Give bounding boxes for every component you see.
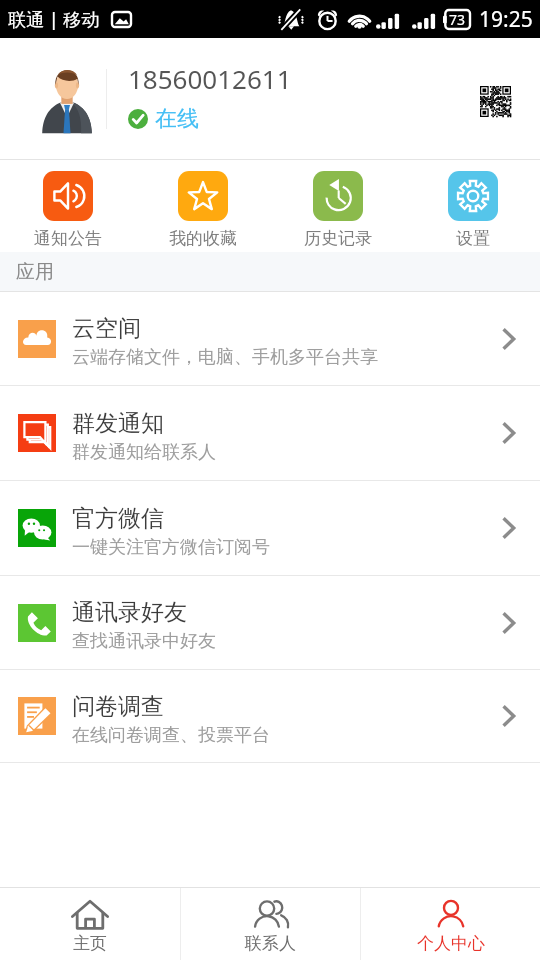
staticText: 在线问卷调查、投票平台 [72,724,270,747]
button[interactable]: 官方微信 [0,481,540,575]
staticText: 设置 [456,228,490,249]
staticText: 查找通讯录中好友 [72,630,216,653]
button[interactable]: 个人中心 [361,888,540,954]
staticText: 群发通知给联系人 [72,441,216,464]
button[interactable]: QR code [480,86,511,117]
staticText: 73 [449,10,466,29]
staticText: 官方微信 [72,504,164,533]
staticText: 联通 | 移动 [8,7,100,32]
staticText: 群发通知 [72,409,164,438]
staticText: 应用 [16,260,54,284]
staticText: 19:25 [479,5,533,34]
button[interactable]: 主页 [0,888,180,954]
staticText: 联系人 [245,933,296,954]
staticText: 主页 [73,933,107,954]
staticText: 历史记录 [304,228,372,249]
staticText: 云端存储文件，电脑、手机多平台共享 [72,346,378,369]
staticText: 云空间 [72,314,141,343]
staticText: 个人中心 [417,933,485,954]
button[interactable]: 联系人 [181,888,360,954]
button[interactable]: 设置 [405,160,540,249]
button[interactable]: 云空间 [0,292,540,385]
staticText: 18560012611 [128,61,292,96]
staticText: 通讯录好友 [72,598,187,627]
staticText: 一键关注官方微信订阅号 [72,536,270,559]
button[interactable]: 历史记录 [270,160,405,249]
staticText: 在线 [155,105,199,133]
staticText: 问卷调查 [72,692,164,721]
button[interactable]: 群发通知 [0,386,540,480]
staticText: 通知公告 [34,228,102,249]
button[interactable]: 通知公告 [0,160,135,249]
button[interactable]: 问卷调查 [0,670,540,762]
button[interactable]: 通讯录好友 [0,576,540,669]
button[interactable]: 我的收藏 [135,160,270,249]
staticText: 我的收藏 [169,228,237,249]
